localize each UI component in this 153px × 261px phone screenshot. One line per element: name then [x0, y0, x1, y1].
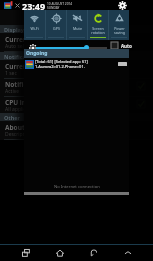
button[interactable]: Back: [85, 244, 102, 261]
button[interactable]: Recents: [17, 244, 34, 261]
button[interactable]: Home: [51, 244, 68, 261]
staticText: About: [5, 123, 25, 132]
staticText: Ongoing: [26, 50, 48, 57]
button[interactable]: Wi-Fi: [24, 10, 45, 40]
button[interactable]: Current refresh interval: [0, 61, 153, 79]
staticText: Auto select: [5, 43, 31, 50]
button[interactable]: Power saving: [109, 10, 129, 40]
button[interactable]: Current screen orientation: [0, 34, 153, 52]
staticText: Notification: [4, 53, 37, 60]
staticText: Auto: [121, 43, 132, 49]
staticText: Screen rotation: [91, 26, 105, 35]
button[interactable]: CPU information: [0, 97, 153, 115]
staticText: 10 AUGUST 2014: [47, 2, 73, 6]
staticText: Notification: [5, 80, 44, 89]
staticText: Display: [4, 26, 24, 33]
staticText: [Total: 61] [Selected app: 61]: [35, 59, 88, 64]
staticText: 1.Aurora2=01.2.Phone=01.: [35, 64, 85, 69]
button[interactable]: Settings: [118, 1, 127, 10]
staticText: Wi-Fi: [30, 26, 39, 31]
staticText: All applications: [5, 106, 41, 113]
button[interactable]: Mute: [67, 10, 87, 40]
button[interactable]: Expand: [119, 244, 136, 261]
button[interactable]: Auto brightness: [111, 42, 118, 49]
staticText: GPS: [53, 26, 60, 31]
staticText: Other: [4, 114, 21, 121]
button[interactable]: Screen rotation: [88, 10, 108, 40]
button[interactable]: [Total: 61] [Selected app: 61]: [24, 58, 129, 70]
button[interactable]: GPS: [46, 10, 66, 40]
staticText: Description of this app: [5, 131, 59, 138]
staticText: Active: [5, 88, 20, 95]
staticText: Mute: [73, 26, 82, 31]
staticText: Power saving: [114, 26, 125, 35]
staticText: Current screen orientation: [5, 35, 92, 44]
staticText: 23:49: [22, 0, 46, 10]
staticText: SUNDAY: [47, 6, 60, 10]
button[interactable]: Notification: [0, 79, 153, 97]
button[interactable]: About: [0, 122, 153, 140]
button[interactable]: [36, 42, 107, 53]
staticText: 1 sec: [5, 70, 17, 77]
staticText: Current refresh interval: [5, 62, 83, 71]
staticText: CPU information: [5, 98, 59, 107]
staticText: No Internet connection: [54, 184, 100, 190]
